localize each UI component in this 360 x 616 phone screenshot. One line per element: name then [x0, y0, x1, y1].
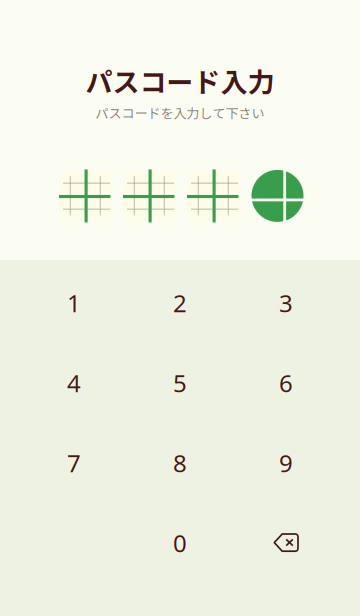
staticText: パスコードを入力して下さい: [95, 103, 264, 122]
button[interactable]: 5: [127, 343, 233, 423]
staticText: 7: [67, 447, 81, 479]
button[interactable]: 4: [21, 343, 127, 423]
button[interactable]: 1: [21, 263, 127, 343]
button[interactable]: 0: [127, 503, 233, 583]
staticText: 6: [279, 367, 293, 399]
staticText: 0: [173, 527, 187, 559]
staticText: 2: [173, 287, 187, 319]
staticText: 4: [67, 367, 81, 399]
button[interactable]: 7: [21, 423, 127, 503]
staticText: パスコード入力: [85, 61, 274, 100]
button[interactable]: 9: [233, 423, 339, 503]
button[interactable]: Delete: [233, 503, 339, 583]
button[interactable]: 8: [127, 423, 233, 503]
button[interactable]: 6: [233, 343, 339, 423]
staticText: 3: [279, 287, 293, 319]
button[interactable]: 3: [233, 263, 339, 343]
staticText: 8: [173, 447, 187, 479]
staticText: 1: [67, 287, 81, 319]
staticText: 9: [279, 447, 293, 479]
staticText: 5: [173, 367, 187, 399]
button[interactable]: 2: [127, 263, 233, 343]
